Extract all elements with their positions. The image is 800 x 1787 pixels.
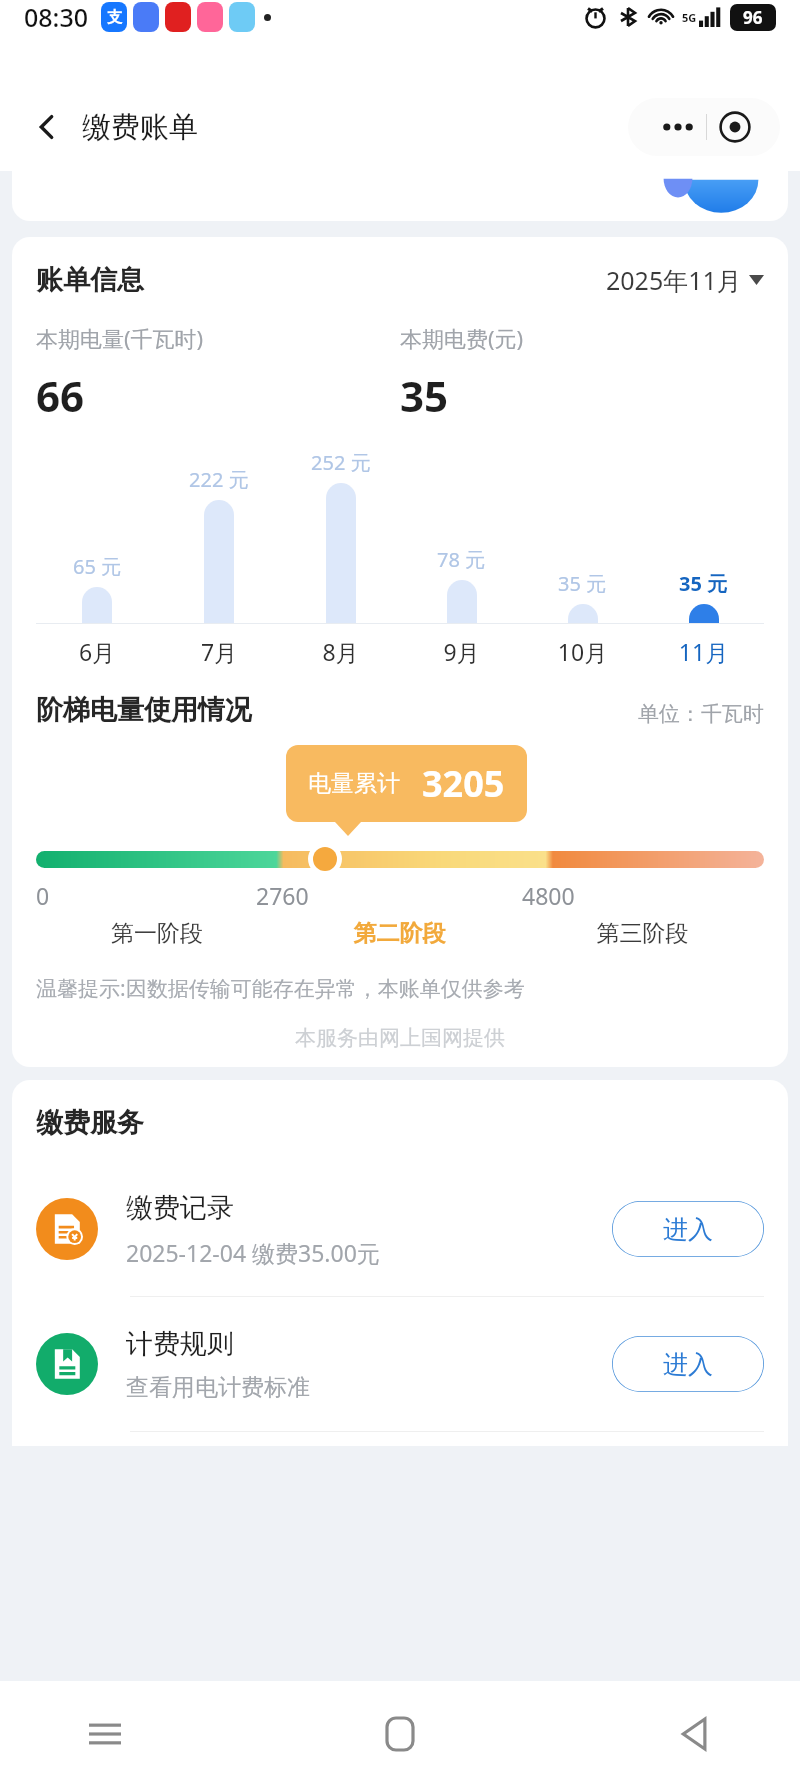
staticText: 查看用电计费标准 (126, 1373, 310, 1402)
staticText: 4800 (522, 880, 575, 911)
staticText: 计费规则 (126, 1327, 234, 1361)
staticText: 温馨提示:因数据传输可能存在异常，本账单仅供参考 (36, 974, 525, 1003)
staticText: 缴费账单 (82, 109, 198, 146)
staticText: 8月 (280, 636, 401, 667)
button[interactable]: 计费规则 (36, 1297, 764, 1431)
staticText: 2760 (256, 880, 309, 911)
staticText: 35 元 (679, 570, 728, 597)
staticText: 第三阶段 (521, 919, 764, 948)
button[interactable]: Home (365, 1699, 435, 1769)
button[interactable]: More options (628, 98, 780, 156)
staticText: 66 (36, 367, 85, 424)
staticText: 7月 (158, 636, 280, 667)
button[interactable]: Recents (70, 1699, 140, 1769)
staticText: 缴费服务 (36, 1106, 144, 1140)
staticText: 6月 (36, 636, 158, 667)
staticText: 第二阶段 (278, 919, 521, 948)
staticText: 3205 (422, 759, 505, 808)
staticText: 账单信息 (36, 263, 144, 297)
staticText: 2025-12-04 缴费35.00元 (126, 1237, 380, 1268)
staticText: 第一阶段 (36, 919, 278, 948)
staticText: 35 (400, 367, 449, 424)
staticText: 96 (743, 6, 763, 29)
button[interactable]: Back (24, 104, 70, 150)
staticText: 5G (682, 10, 697, 25)
staticText: 252 元 (311, 449, 371, 476)
button[interactable]: 进入 (612, 1201, 764, 1257)
button[interactable]: 2025年11月 (606, 263, 764, 297)
staticText: 本期电费(元) (400, 323, 524, 353)
button[interactable]: Back (660, 1699, 730, 1769)
staticText: 2025年11月 (606, 263, 742, 297)
button[interactable]: 进入 (612, 1336, 764, 1392)
staticText: 本服务由网上国网提供 (36, 1025, 764, 1051)
staticText: 10月 (522, 636, 643, 667)
staticText: 0 (36, 880, 50, 911)
staticText: 35 元 (558, 570, 607, 597)
staticText: 电量累计 (308, 769, 400, 798)
staticText: 阶梯电量使用情况 (36, 693, 252, 727)
staticText: 78 元 (437, 546, 486, 573)
button[interactable]: 缴费记录 (36, 1162, 764, 1296)
staticText: 222 元 (189, 466, 249, 493)
staticText: 进入 (663, 1214, 713, 1245)
staticText: 进入 (663, 1349, 713, 1380)
staticText: 08:30 (24, 0, 89, 34)
staticText: 11月 (643, 636, 764, 667)
staticText: 65 元 (73, 553, 122, 580)
staticText: 9月 (401, 636, 522, 667)
staticText: 支 (107, 8, 122, 27)
staticText: 缴费记录 (126, 1191, 234, 1225)
staticText: 单位：千瓦时 (638, 701, 764, 727)
staticText: 本期电量(千瓦时) (36, 323, 204, 353)
